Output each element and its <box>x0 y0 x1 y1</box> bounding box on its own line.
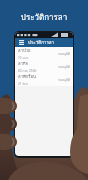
staticText: ลาพักร้อน <box>18 73 36 80</box>
staticText: รออนุมัติ <box>58 77 70 82</box>
staticText: 21 มี.ค. <box>18 81 29 86</box>
staticText: 03 ก.พ. 2566 <box>18 68 37 73</box>
button[interactable]: ลาป่วย <box>15 47 73 60</box>
staticText: ประวัติการลา <box>0 11 88 24</box>
staticText: ประวัติการลา <box>28 39 55 46</box>
button[interactable]: ลากิจ <box>15 60 73 73</box>
staticText: รออนุมัติ <box>58 64 70 69</box>
staticText: 12 ม.ค. <box>18 55 29 60</box>
staticText: รออนุมัติ <box>58 51 70 56</box>
button[interactable]: ลาพักร้อน <box>15 73 73 86</box>
button[interactable]: Open navigation menu <box>18 39 25 46</box>
staticText: ลาป่วย <box>18 47 31 54</box>
staticText: ลากิจ <box>18 60 28 67</box>
